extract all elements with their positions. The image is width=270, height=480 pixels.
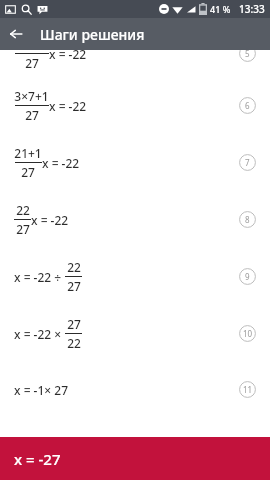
staticText: x = -22 × [14, 326, 65, 342]
button[interactable]: x = -22 ÷ [0, 248, 270, 305]
staticText: Шаги решения [40, 25, 145, 44]
button[interactable]: 22 [0, 191, 270, 248]
staticText: x = -22 ÷ [14, 269, 65, 285]
staticText: 22 [67, 259, 81, 275]
staticText: 3×7+1 [14, 88, 49, 104]
staticText: 22 [16, 202, 30, 218]
button[interactable]: 5 [239, 50, 256, 62]
button[interactable]: 3×7+1 [0, 77, 270, 134]
staticText: x = -1× 27 [14, 382, 69, 398]
staticText: 27 [67, 278, 81, 294]
staticText: 41 % [210, 3, 231, 15]
staticText: 22 [67, 335, 81, 351]
staticText: x = -22 [49, 50, 87, 62]
staticText: 6 [245, 100, 250, 111]
button[interactable]: 11 [239, 381, 256, 398]
button[interactable]: 3×7+1 [0, 50, 270, 77]
staticText: x = -22 [49, 98, 87, 114]
staticText: 27 [16, 221, 30, 237]
staticText: x = -22 [42, 155, 80, 171]
staticText: 27 [67, 316, 81, 332]
button[interactable]: x = -27 [0, 437, 270, 480]
staticText: 11 [243, 384, 253, 395]
staticText: 10 [243, 328, 253, 339]
staticText: 27 [25, 55, 39, 71]
button[interactable]: 9 [239, 268, 256, 285]
button[interactable]: Назад [0, 18, 32, 50]
staticText: 21+1 [14, 145, 42, 161]
button[interactable]: x = -1× 27 [0, 362, 270, 417]
staticText: 9 [245, 271, 250, 282]
staticText: 5 [245, 50, 250, 59]
staticText: 13:33 [239, 2, 265, 16]
button[interactable]: 21+1 [0, 134, 270, 191]
staticText: x = -22 [31, 212, 69, 228]
staticText: 7 [245, 157, 250, 168]
button[interactable]: x = -22 × [0, 305, 270, 362]
staticText: 27 [25, 107, 39, 123]
staticText: 8 [245, 214, 250, 225]
staticText: 27 [21, 164, 35, 180]
button[interactable]: 10 [239, 325, 256, 342]
button[interactable]: 6 [239, 97, 256, 114]
button[interactable]: 8 [239, 211, 256, 228]
staticText: x = -27 [14, 449, 61, 469]
button[interactable]: 7 [239, 154, 256, 171]
